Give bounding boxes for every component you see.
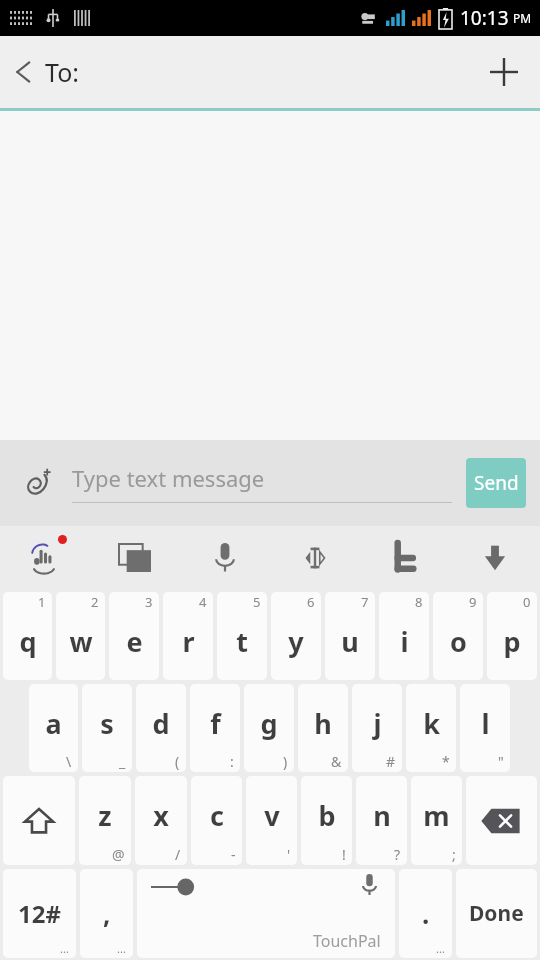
button[interactable]: v (246, 776, 297, 865)
button[interactable]: Send (466, 458, 526, 508)
staticText: Done (469, 899, 524, 928)
staticText: 1 (38, 593, 46, 611)
staticText: a (45, 705, 62, 742)
staticText: v (264, 797, 280, 834)
staticText: ... (60, 941, 69, 956)
staticText: m (423, 797, 450, 834)
staticText: 4 (199, 593, 207, 611)
staticText: 10:13 (460, 5, 509, 31)
staticText: PM (513, 10, 532, 26)
staticText: . (422, 896, 430, 931)
button[interactable]: Add recipient (484, 52, 540, 92)
staticText: ( (175, 752, 180, 771)
button[interactable]: Done (456, 869, 537, 958)
staticText: ' (287, 845, 291, 864)
button[interactable]: l (460, 684, 510, 772)
button[interactable]: s (82, 684, 132, 772)
button[interactable]: x (135, 776, 187, 865)
button[interactable]: Space (137, 869, 395, 958)
staticText: ? (394, 845, 401, 864)
button[interactable]: Backspace (466, 776, 537, 865)
staticText: / (175, 845, 181, 864)
button[interactable]: w (56, 592, 105, 680)
staticText: p (503, 623, 521, 660)
button[interactable]: Back (0, 47, 91, 97)
button[interactable]: n (356, 776, 407, 865)
staticText: i (400, 623, 409, 660)
staticText: TouchPal (313, 930, 381, 952)
button[interactable]: e (109, 592, 159, 680)
button[interactable]: a (29, 684, 78, 772)
button[interactable]: q (3, 592, 52, 680)
staticText: 8 (415, 593, 423, 611)
staticText: l (481, 705, 490, 742)
button[interactable]: d (136, 684, 186, 772)
button[interactable]: TouchPal menu (360, 526, 450, 590)
staticText: x (153, 797, 169, 834)
staticText: 3 (145, 593, 153, 611)
button[interactable]: Symbols (3, 869, 76, 958)
staticText: " (498, 752, 504, 771)
button[interactable]: b (301, 776, 352, 865)
staticText: c (210, 797, 224, 834)
button[interactable]: Attach (14, 460, 60, 506)
button[interactable]: u (325, 592, 375, 680)
staticText: j (373, 705, 382, 742)
button[interactable]: z (79, 776, 131, 865)
button[interactable]: Shift (3, 776, 75, 865)
staticText: # (386, 752, 396, 771)
button[interactable]: g (244, 684, 294, 772)
staticText: 5 (253, 593, 261, 611)
button[interactable]: i (379, 592, 429, 680)
staticText: To: (45, 55, 79, 89)
button[interactable]: y (271, 592, 321, 680)
staticText: * (442, 752, 450, 771)
button[interactable]: j (352, 684, 402, 772)
staticText: y (288, 623, 304, 660)
button[interactable]: k (406, 684, 456, 772)
staticText: , (103, 896, 111, 931)
staticText: k (423, 705, 440, 742)
button[interactable]: r (163, 592, 213, 680)
button[interactable]: Hide keyboard (450, 526, 540, 590)
staticText: r (182, 623, 195, 660)
staticText: 2 (91, 593, 99, 611)
button[interactable]: f (190, 684, 240, 772)
staticText: h (314, 705, 332, 742)
button[interactable]: Language EN (90, 526, 180, 590)
staticText: ! (342, 845, 346, 864)
staticText: w (69, 623, 93, 660)
staticText: 7 (361, 593, 369, 611)
button[interactable]: m (411, 776, 462, 865)
staticText: 9 (469, 593, 477, 611)
staticText: Send (474, 470, 519, 496)
staticText: g (260, 705, 278, 742)
staticText: u (341, 623, 359, 660)
button[interactable]: t (217, 592, 267, 680)
staticText: ) (283, 752, 288, 771)
staticText: q (19, 623, 37, 660)
button[interactable]: Cursor control (270, 526, 360, 590)
button[interactable]: o (433, 592, 483, 680)
button[interactable]: Gesture input (0, 526, 90, 590)
other: Back (14, 57, 32, 87)
staticText: Type text message (72, 463, 265, 493)
staticText: \ (66, 752, 72, 771)
button[interactable]: Comma (80, 869, 133, 958)
button[interactable]: p (487, 592, 537, 680)
staticText: s (100, 705, 114, 742)
staticText: & (331, 752, 342, 771)
button[interactable]: c (191, 776, 242, 865)
button[interactable]: Type text message (72, 463, 452, 503)
staticText: 0 (523, 593, 531, 611)
button[interactable]: Period (399, 869, 452, 958)
staticText: n (373, 797, 391, 834)
staticText: _ (119, 752, 126, 771)
staticText: z (98, 797, 112, 834)
button[interactable]: Voice input (180, 526, 270, 590)
staticText: f (210, 705, 221, 742)
staticText: ; (452, 845, 456, 864)
staticText: o (450, 623, 467, 660)
staticText: - (231, 845, 236, 864)
button[interactable]: h (298, 684, 348, 772)
